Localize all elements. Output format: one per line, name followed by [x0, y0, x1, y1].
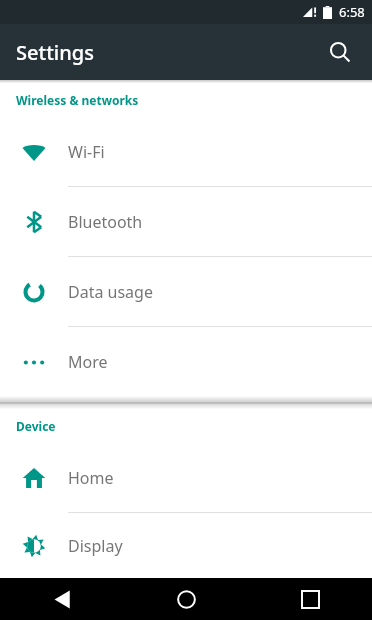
staticText: 6:58: [339, 3, 365, 21]
staticText: Wireless & networks: [16, 92, 139, 108]
staticText: Wi-Fi: [68, 141, 105, 163]
staticText: Settings: [16, 39, 94, 66]
staticText: Display: [68, 535, 123, 557]
button[interactable]: Bluetooth: [0, 187, 372, 256]
staticText: Device: [16, 418, 56, 434]
button[interactable]: Home: [0, 443, 372, 512]
button[interactable]: Home: [124, 578, 248, 620]
staticText: More: [68, 351, 108, 373]
staticText: Bluetooth: [68, 211, 143, 233]
button[interactable]: Wi-Fi: [0, 117, 372, 186]
button[interactable]: Search: [316, 28, 364, 76]
button[interactable]: Display: [0, 513, 372, 578]
staticText: Data usage: [68, 281, 153, 303]
button[interactable]: More: [0, 327, 372, 396]
staticText: Home: [68, 467, 114, 489]
button[interactable]: Data usage: [0, 257, 372, 326]
button[interactable]: Recent apps: [248, 578, 372, 620]
button[interactable]: Back: [0, 578, 124, 620]
